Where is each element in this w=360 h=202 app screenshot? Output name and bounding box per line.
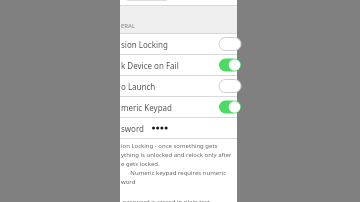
staticText: sion Locking: [121, 39, 219, 50]
button[interactable]: o Launch: [120, 76, 237, 96]
button[interactable]: Toggle on: [219, 97, 237, 117]
staticText: sword: [121, 123, 145, 134]
button[interactable]: k Device on Fail: [120, 55, 237, 75]
button[interactable]: Toggle on: [219, 55, 237, 75]
button[interactable]: meric Keypad: [120, 97, 237, 117]
staticText: word: [121, 178, 136, 186]
button[interactable]: Toggle off: [219, 34, 237, 54]
staticText: ything is unlocked and relock only after: [121, 151, 232, 159]
button[interactable]: Toggle off: [219, 76, 237, 96]
button[interactable]: sion Locking: [120, 34, 237, 54]
staticText: o Launch: [121, 81, 219, 92]
staticText: password is stored in plain text.: [121, 198, 212, 202]
staticText: k Device on Fail: [121, 60, 219, 71]
staticText: meric Keypad: [121, 102, 219, 113]
button[interactable]: sword: [120, 118, 237, 138]
staticText: e gets locked.: [121, 160, 160, 168]
staticText: ion Locking - once something gets unlock: [121, 142, 236, 150]
staticText: Numeric keypad requires numeric: [121, 169, 227, 177]
staticText: ERAL: [121, 22, 136, 30]
